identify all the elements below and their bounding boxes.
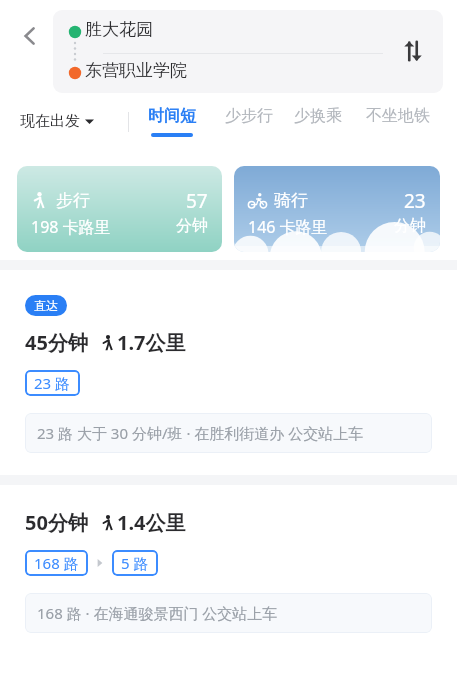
- button[interactable]: Back: [8, 14, 52, 58]
- staticText: 不坐地铁: [366, 106, 430, 126]
- staticText: 1.7公里: [117, 329, 186, 356]
- staticText: 168 路: [34, 553, 79, 573]
- staticText: 57: [186, 188, 208, 214]
- staticText: 1.4公里: [117, 509, 186, 536]
- staticText: 23 路 大于 30 分钟/班 · 在胜利街道办 公交站上车: [37, 423, 364, 443]
- button[interactable]: 步行: [17, 166, 222, 252]
- staticText: 少换乘: [294, 106, 342, 126]
- button[interactable]: Swap origin and destination: [392, 30, 434, 72]
- staticText: 5 路: [121, 553, 149, 573]
- button[interactable]: 168 路: [25, 550, 88, 576]
- staticText: 23: [404, 188, 426, 214]
- staticText: 少步行: [225, 106, 273, 126]
- staticText: 168 路 · 在海通骏景西门 公交站上车: [37, 603, 278, 623]
- staticText: 45分钟: [25, 329, 88, 356]
- button[interactable]: 现在出发: [20, 112, 94, 131]
- button[interactable]: 骑行: [234, 166, 440, 252]
- staticText: 198 卡路里: [31, 216, 111, 238]
- staticText: 时间短: [148, 106, 196, 126]
- staticText: 东营职业学院: [85, 60, 187, 81]
- staticText: 分钟: [394, 216, 426, 236]
- button[interactable]: 少换乘: [294, 106, 342, 126]
- button[interactable]: 少步行: [225, 106, 273, 126]
- staticText: 现在出发: [20, 112, 80, 131]
- button[interactable]: 168 路 · 在海通骏景西门 公交站上车: [25, 593, 432, 633]
- button[interactable]: 5 路: [112, 550, 158, 576]
- staticText: 分钟: [176, 216, 208, 236]
- button[interactable]: 23 路: [25, 370, 80, 396]
- staticText: 胜大花园: [85, 19, 153, 40]
- button[interactable]: 50分钟: [0, 485, 457, 655]
- staticText: 50分钟: [25, 509, 88, 536]
- staticText: 骑行: [274, 190, 308, 211]
- staticText: 直达: [34, 298, 58, 313]
- button[interactable]: 时间短: [148, 106, 196, 137]
- button[interactable]: 胜大花园: [53, 10, 443, 93]
- staticText: 23 路: [34, 373, 71, 393]
- button[interactable]: 直达: [0, 270, 457, 475]
- staticText: 步行: [56, 190, 90, 211]
- button[interactable]: 不坐地铁: [366, 106, 430, 126]
- button[interactable]: 23 路 大于 30 分钟/班 · 在胜利街道办 公交站上车: [25, 413, 432, 453]
- staticText: 146 卡路里: [248, 216, 328, 238]
